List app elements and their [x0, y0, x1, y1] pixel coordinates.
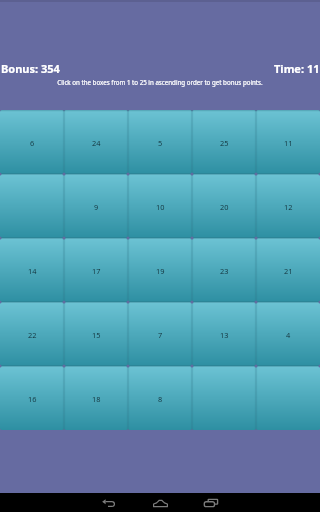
button[interactable]: Box 16 — [0, 366, 64, 430]
staticText: 9 — [94, 202, 99, 212]
button[interactable]: Back — [86, 493, 130, 512]
staticText: 8 — [158, 394, 163, 404]
staticText: 25 — [220, 138, 229, 148]
button[interactable]: Box 9 — [64, 174, 128, 238]
button[interactable]: Box 19 — [128, 238, 192, 302]
staticText: Bonus: 354 — [1, 61, 60, 76]
staticText: 14 — [28, 266, 37, 276]
button[interactable]: Recent apps — [189, 493, 233, 512]
staticText: 13 — [220, 330, 229, 340]
staticText: 23 — [220, 266, 229, 276]
staticText: 20 — [220, 202, 229, 212]
button[interactable]: Box 18 — [64, 366, 128, 430]
button[interactable]: Box 24 — [64, 110, 128, 174]
button[interactable]: Home — [138, 493, 182, 512]
button[interactable]: Empty box — [256, 366, 320, 430]
staticText: 11 — [284, 138, 293, 148]
staticText: 15 — [92, 330, 101, 340]
button[interactable]: Box 4 — [256, 302, 320, 366]
staticText: 17 — [92, 266, 101, 276]
button[interactable]: Box 8 — [128, 366, 192, 430]
button[interactable]: Box 22 — [0, 302, 64, 366]
staticText: 5 — [158, 138, 163, 148]
staticText: 4 — [286, 330, 291, 340]
staticText: Click on the boxes from 1 to 25 in ascen… — [57, 78, 263, 86]
button[interactable]: Box 17 — [64, 238, 128, 302]
button[interactable]: Box 7 — [128, 302, 192, 366]
staticText: 16 — [28, 394, 37, 404]
staticText: 21 — [284, 266, 293, 276]
button[interactable]: Box 12 — [256, 174, 320, 238]
button[interactable]: Box 21 — [256, 238, 320, 302]
staticText: 24 — [92, 138, 101, 148]
button[interactable]: Box 10 — [128, 174, 192, 238]
button[interactable]: Empty box — [0, 174, 64, 238]
staticText: 6 — [30, 138, 35, 148]
button[interactable]: Box 25 — [192, 110, 256, 174]
staticText: 22 — [28, 330, 37, 340]
staticText: 7 — [158, 330, 163, 340]
button[interactable]: Box 11 — [256, 110, 320, 174]
button[interactable]: Box 15 — [64, 302, 128, 366]
button[interactable]: Box 6 — [0, 110, 64, 174]
staticText: 19 — [156, 266, 165, 276]
button[interactable]: Box 5 — [128, 110, 192, 174]
button[interactable]: Box 23 — [192, 238, 256, 302]
staticText: 12 — [284, 202, 293, 212]
button[interactable]: Box 13 — [192, 302, 256, 366]
staticText: Time: 11 — [274, 61, 320, 76]
staticText: 10 — [156, 202, 165, 212]
button[interactable]: Box 14 — [0, 238, 64, 302]
button[interactable]: Empty box — [192, 366, 256, 430]
button[interactable]: Box 20 — [192, 174, 256, 238]
staticText: 18 — [92, 394, 101, 404]
